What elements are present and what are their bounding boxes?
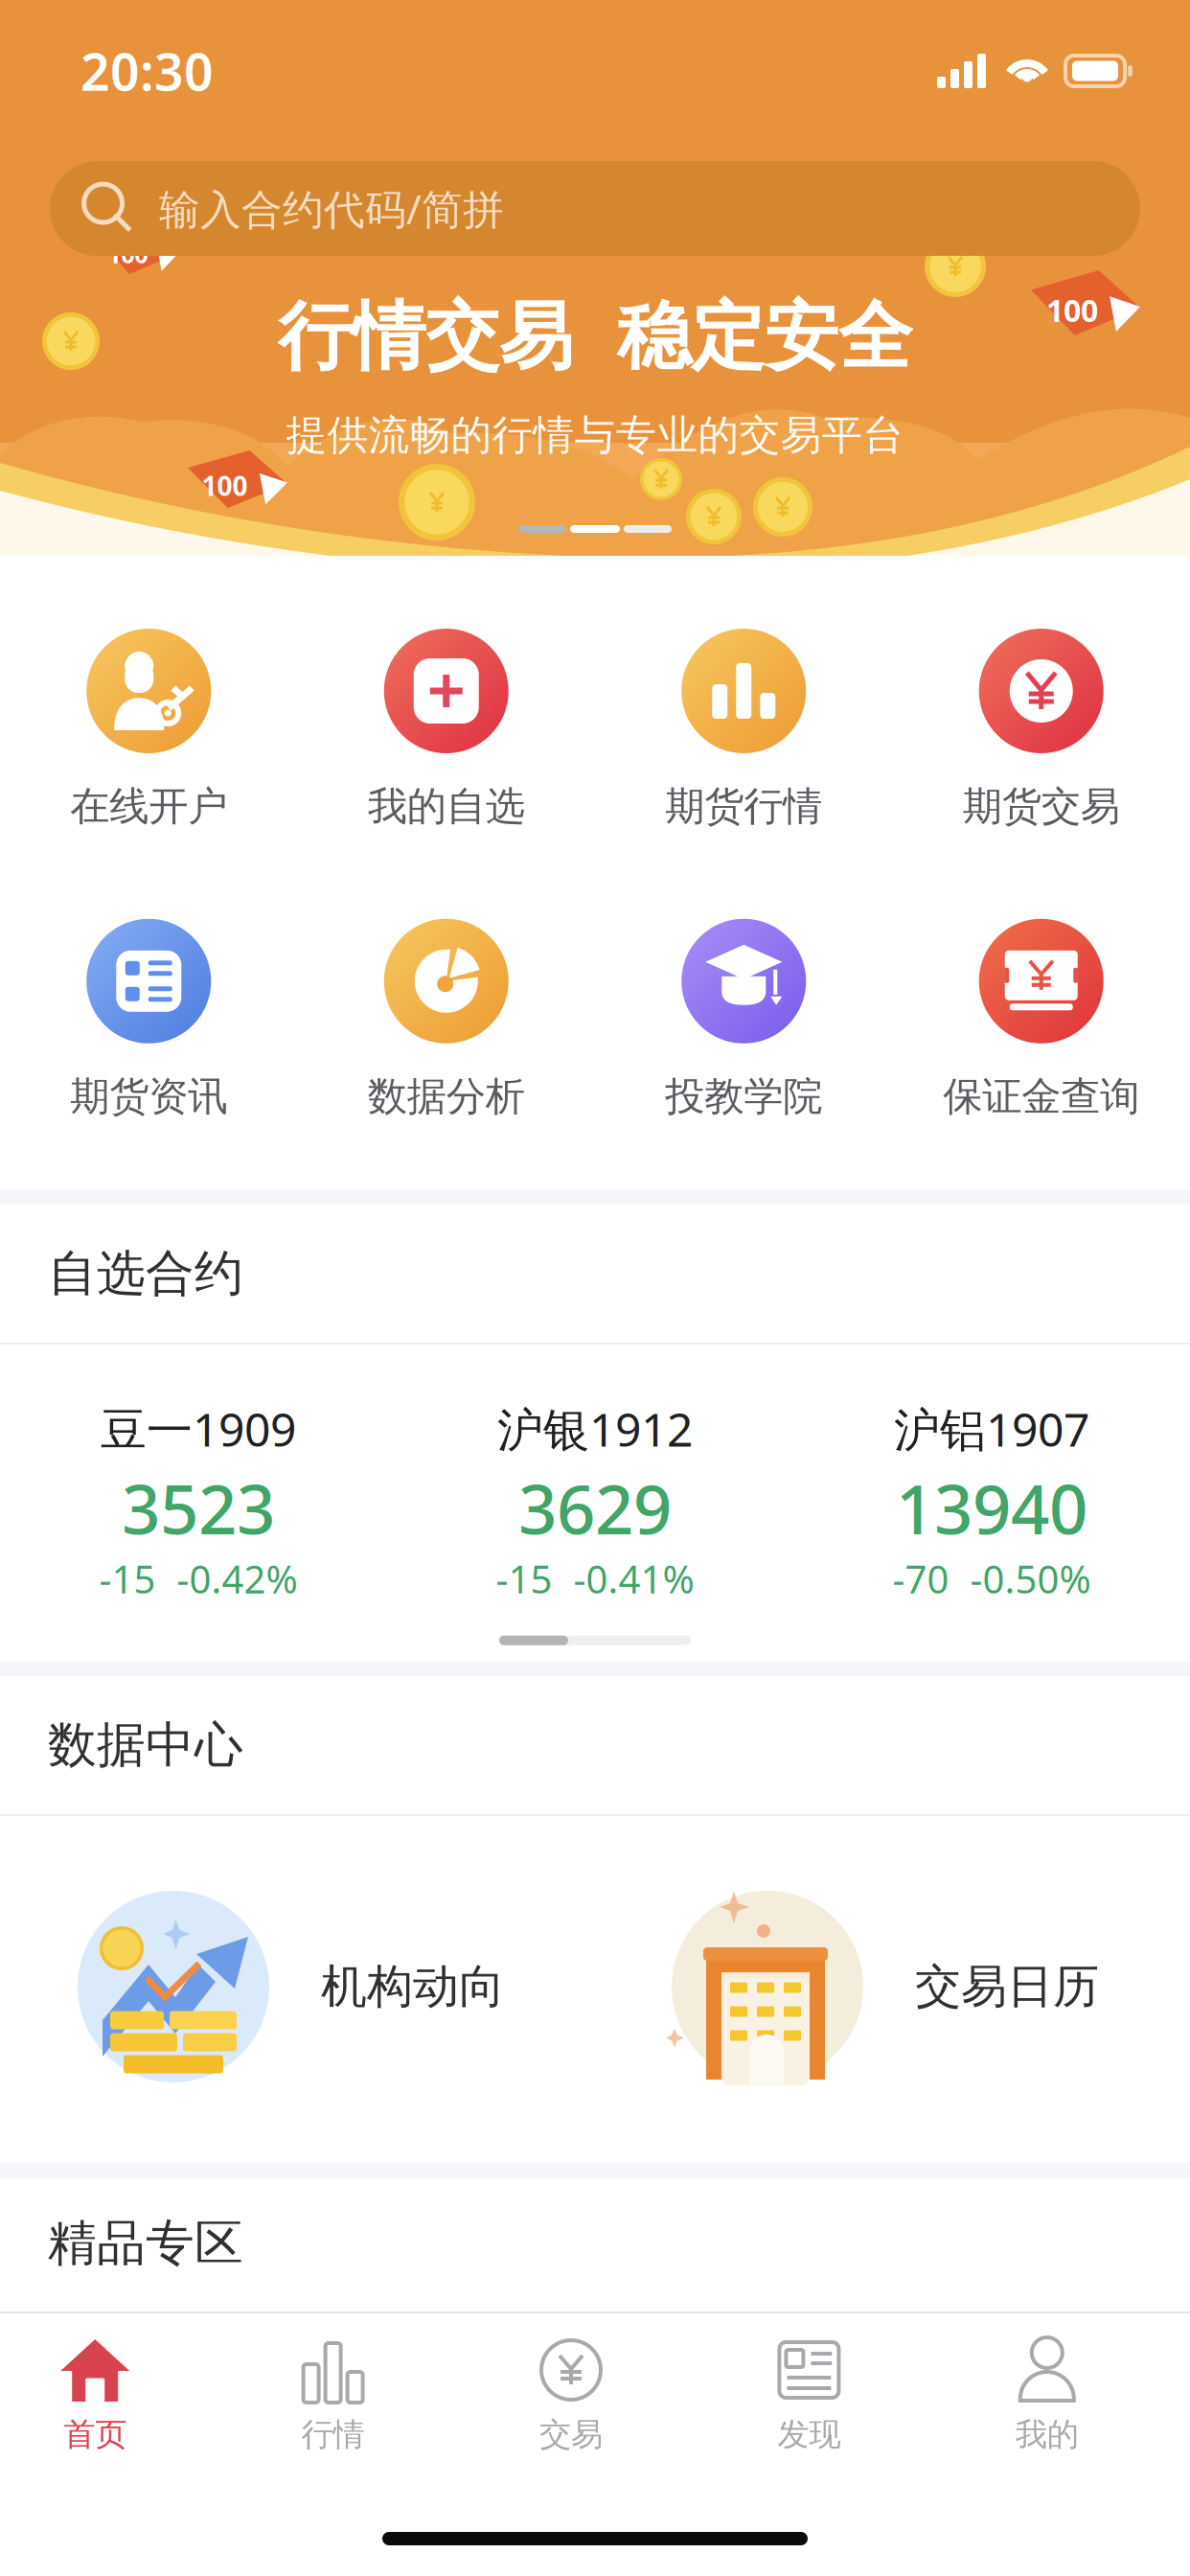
button[interactable]: 在线开户 <box>0 629 297 831</box>
staticText: 期货资讯 <box>70 1072 227 1121</box>
staticText: 发现 <box>777 2415 841 2454</box>
staticText: 期货行情 <box>665 782 822 831</box>
button[interactable]: 期货行情 <box>595 629 892 831</box>
staticText: 100 <box>1046 290 1098 331</box>
staticText: 沪银1912 <box>497 1398 693 1459</box>
staticText: 输入合约代码/简拼 <box>159 181 504 236</box>
staticText: 投教学院 <box>665 1072 822 1121</box>
button[interactable]: 我的自选 <box>297 629 595 831</box>
staticText: 在线开户 <box>70 782 227 831</box>
staticText: -0.42% <box>177 1553 297 1604</box>
button[interactable]: 交易日历 <box>595 1891 1190 2082</box>
staticText: 我的 <box>1015 2415 1079 2454</box>
staticText: 机构动向 <box>321 1958 505 2015</box>
staticText: 精品专区 <box>48 2214 243 2273</box>
staticText: 3523 <box>122 1463 275 1553</box>
button[interactable]: 我的 <box>928 2313 1166 2471</box>
button[interactable]: 沪铝1907 <box>793 1398 1190 1604</box>
staticText: 数据中心 <box>48 1715 243 1775</box>
staticText: 保证金查询 <box>943 1072 1139 1121</box>
button[interactable]: 保证金查询 <box>892 919 1190 1121</box>
staticText: 期货交易 <box>963 782 1120 831</box>
staticText: -15 <box>496 1553 552 1604</box>
button[interactable]: 发现 <box>690 2313 928 2471</box>
button[interactable]: 首页 <box>0 2313 214 2471</box>
button[interactable]: 行情 <box>214 2313 452 2471</box>
button[interactable]: 期货资讯 <box>0 919 297 1121</box>
staticText: 交易日历 <box>915 1958 1099 2015</box>
staticText: 行情 <box>301 2415 365 2454</box>
button[interactable]: 数据分析 <box>297 919 595 1121</box>
staticText: -15 <box>99 1553 156 1604</box>
staticText: 交易 <box>539 2415 603 2454</box>
staticText: 100 <box>202 468 248 503</box>
staticText: 数据分析 <box>368 1072 525 1121</box>
staticText: 20:30 <box>80 37 214 105</box>
staticText: 首页 <box>63 2415 127 2454</box>
button[interactable]: 机构动向 <box>0 1891 595 2082</box>
button[interactable]: 沪银1912 <box>397 1398 793 1604</box>
staticText: 100 <box>108 238 148 270</box>
staticText: -70 <box>892 1553 949 1604</box>
staticText: 我的自选 <box>368 782 525 831</box>
staticText: 13940 <box>896 1463 1087 1553</box>
button[interactable]: 期货交易 <box>892 629 1190 831</box>
button[interactable]: 投教学院 <box>595 919 892 1121</box>
staticText: 提供流畅的行情与专业的交易平台 <box>286 410 904 460</box>
button[interactable]: 输入合约代码/简拼 <box>50 161 1140 256</box>
staticText: 3629 <box>518 1463 672 1553</box>
button[interactable]: 豆一1909 <box>0 1398 397 1604</box>
staticText: 自选合约 <box>48 1244 243 1303</box>
staticText: 行情交易 稳定安全 <box>278 291 912 382</box>
staticText: -0.50% <box>970 1553 1091 1604</box>
button[interactable]: 交易 <box>452 2313 690 2471</box>
staticText: -0.41% <box>573 1553 694 1604</box>
staticText: 沪铝1907 <box>894 1398 1089 1459</box>
staticText: 豆一1909 <box>101 1398 296 1459</box>
